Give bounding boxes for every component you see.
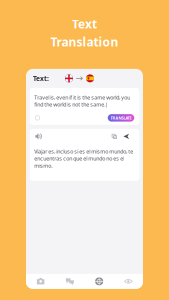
button[interactable]: Conversation	[55, 274, 84, 289]
staticText: Translation	[50, 34, 118, 50]
button[interactable]: TRANSLATE	[108, 114, 134, 122]
button[interactable]: Camera translation	[26, 274, 55, 289]
button[interactable]: Text translation	[84, 274, 114, 289]
staticText: Text:	[33, 74, 49, 83]
staticText: Viajar es, incluso si es el mismo mundo,…	[34, 148, 133, 169]
staticText: Text	[72, 16, 97, 32]
button[interactable]: Copy	[112, 134, 117, 139]
button[interactable]: Speak translation	[35, 133, 42, 140]
staticText: TRANSLATE	[110, 115, 131, 120]
button[interactable]: Share	[123, 133, 129, 139]
staticText: Travel is, even if it is the same world,…	[34, 94, 130, 108]
button[interactable]: Settings	[114, 274, 143, 289]
